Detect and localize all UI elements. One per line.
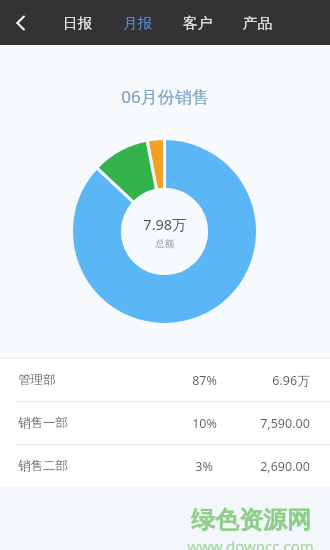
staticText: 7.98万 bbox=[143, 214, 187, 234]
button[interactable]: 管理部 bbox=[0, 359, 330, 401]
staticText: 销售一部 bbox=[18, 415, 68, 431]
button[interactable]: 销售一部 bbox=[0, 402, 330, 444]
button[interactable]: 月报 bbox=[111, 0, 163, 45]
staticText: 产品 bbox=[243, 14, 272, 32]
staticText: 7,590.00 bbox=[260, 415, 310, 432]
staticText: 销售二部 bbox=[18, 458, 68, 474]
staticText: 87% bbox=[192, 372, 217, 389]
staticText: 客户 bbox=[183, 14, 212, 32]
staticText: 绿色资源网 bbox=[191, 505, 311, 535]
staticText: 06月份销售 bbox=[121, 85, 209, 108]
staticText: 10% bbox=[192, 415, 217, 432]
staticText: 日报 bbox=[63, 14, 92, 32]
button[interactable]: Back bbox=[0, 0, 42, 45]
staticText: 2,690.00 bbox=[260, 458, 310, 475]
staticText: 6.96万 bbox=[272, 372, 310, 389]
staticText: 月报 bbox=[123, 14, 152, 32]
button[interactable]: 产品 bbox=[231, 0, 283, 45]
button[interactable]: 客户 bbox=[171, 0, 223, 45]
staticText: 3% bbox=[195, 458, 213, 475]
staticText: www.downcc.com bbox=[187, 536, 314, 550]
staticText: 总额 bbox=[155, 238, 174, 250]
button[interactable]: 销售二部 bbox=[0, 445, 330, 487]
staticText: 管理部 bbox=[18, 372, 56, 388]
button[interactable]: 日报 bbox=[51, 0, 103, 45]
